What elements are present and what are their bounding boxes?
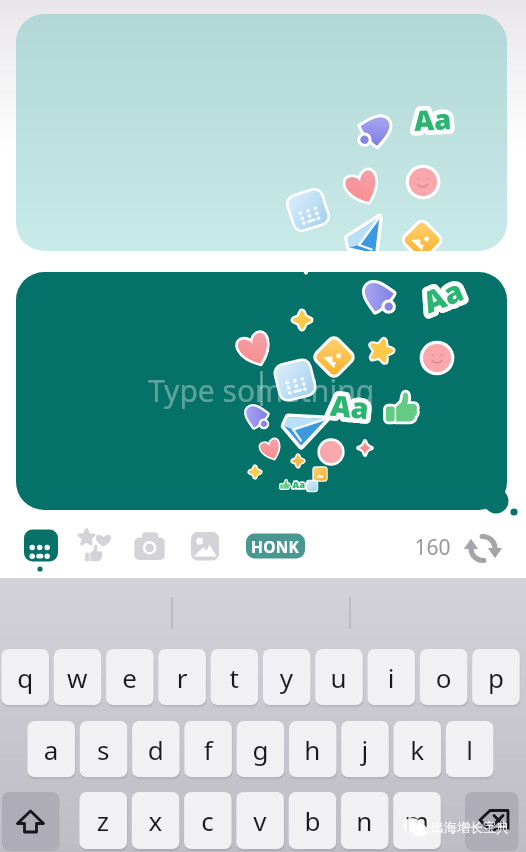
button[interactable]: Honk	[246, 533, 305, 559]
button[interactable]: c	[184, 792, 231, 849]
button[interactable]: d	[132, 721, 179, 777]
button[interactable]: h	[289, 721, 336, 777]
button[interactable]: l	[445, 721, 492, 777]
button[interactable]: Backspace	[465, 792, 518, 849]
button[interactable]: w	[53, 649, 100, 705]
button[interactable]: Swap	[460, 528, 504, 568]
button[interactable]: Message input, Type something	[16, 272, 507, 510]
button[interactable]: Stickers	[76, 524, 118, 566]
button[interactable]: o	[419, 649, 466, 705]
button[interactable]: i	[367, 649, 414, 705]
button[interactable]: v	[236, 792, 283, 849]
button[interactable]: z	[79, 792, 126, 849]
button[interactable]: g	[236, 721, 283, 777]
button[interactable]: a	[27, 721, 74, 777]
button[interactable]: f	[184, 721, 231, 777]
button[interactable]: Shift	[2, 792, 59, 849]
button[interactable]: p	[472, 649, 519, 705]
button[interactable]: s	[79, 721, 126, 777]
button[interactable]: r	[158, 649, 205, 705]
button[interactable]: j	[341, 721, 388, 777]
button[interactable]: Camera	[130, 524, 172, 566]
button[interactable]: y	[263, 649, 310, 705]
button[interactable]: x	[131, 792, 178, 849]
button[interactable]: t	[210, 649, 257, 705]
button[interactable]: q	[1, 649, 48, 705]
button[interactable]: u	[315, 649, 362, 705]
button[interactable]: k	[393, 721, 440, 777]
button[interactable]: b	[288, 792, 335, 849]
button[interactable]: m	[393, 792, 440, 849]
button[interactable]: Gallery	[186, 524, 228, 566]
button[interactable]: Keyboard	[20, 524, 62, 566]
button[interactable]: n	[341, 792, 388, 849]
button[interactable]: e	[106, 649, 153, 705]
